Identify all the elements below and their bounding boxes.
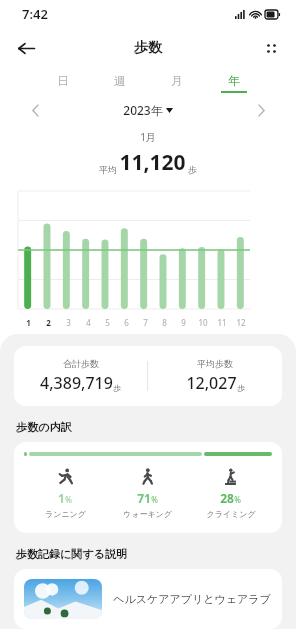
- staticText: 歩数記録に関する説明: [16, 547, 127, 561]
- button[interactable]: 71: [106, 468, 189, 519]
- staticText: 28: [220, 490, 234, 506]
- staticText: 8: [162, 317, 167, 328]
- button[interactable]: 1: [24, 468, 106, 519]
- button[interactable]: 合計歩数: [14, 346, 282, 406]
- button[interactable]: 週: [91, 68, 148, 98]
- staticText: 月: [171, 73, 183, 88]
- staticText: 2: [46, 317, 51, 328]
- staticText: 歩: [237, 383, 245, 393]
- button[interactable]: 28: [189, 468, 272, 519]
- staticText: 9: [181, 317, 186, 328]
- staticText: 5: [105, 317, 110, 328]
- staticText: 合計歩数: [63, 358, 99, 369]
- staticText: 7: [143, 317, 148, 328]
- staticText: 3: [66, 317, 71, 328]
- button[interactable]: 2023年: [123, 102, 173, 118]
- staticText: 10: [198, 317, 208, 328]
- staticText: 週: [114, 73, 126, 88]
- staticText: 日: [57, 73, 69, 88]
- staticText: 11,120: [119, 148, 186, 177]
- staticText: 12,027: [186, 372, 237, 394]
- staticText: ランニング: [45, 509, 86, 519]
- button[interactable]: 年: [205, 68, 262, 98]
- staticText: %: [151, 494, 158, 505]
- staticText: 4: [86, 317, 91, 328]
- staticText: 2023年: [123, 102, 163, 118]
- staticText: 11: [217, 317, 227, 328]
- staticText: 71: [137, 490, 151, 506]
- button[interactable]: 1: [14, 442, 282, 533]
- staticText: 歩: [188, 164, 197, 175]
- staticText: 6: [124, 317, 129, 328]
- staticText: 7:42: [22, 5, 48, 23]
- button[interactable]: 日: [34, 68, 91, 98]
- button[interactable]: ヘルスケアアプリとウェアラブ: [14, 569, 282, 629]
- staticText: 1: [58, 490, 65, 506]
- button[interactable]: Back: [8, 30, 44, 66]
- button[interactable]: 月: [148, 68, 205, 98]
- staticText: 歩数: [134, 39, 162, 57]
- staticText: クライミング: [206, 509, 256, 519]
- staticText: 平均歩数: [197, 358, 233, 369]
- staticText: 平均: [99, 164, 117, 175]
- staticText: ヘルスケアアプリとウェアラブ: [112, 592, 272, 606]
- staticText: 1月: [140, 130, 156, 144]
- staticText: %: [65, 494, 72, 505]
- button[interactable]: Next year: [248, 98, 274, 122]
- staticText: 12: [236, 317, 246, 328]
- button[interactable]: Previous year: [22, 98, 48, 122]
- staticText: 4,389,719: [40, 372, 113, 394]
- staticText: 年: [228, 73, 240, 88]
- staticText: %: [234, 494, 241, 505]
- staticText: 歩数の内訳: [16, 420, 72, 434]
- staticText: ウォーキング: [123, 509, 172, 519]
- button[interactable]: More options: [254, 31, 288, 65]
- staticText: 歩: [113, 383, 121, 393]
- staticText: 1: [26, 317, 31, 328]
